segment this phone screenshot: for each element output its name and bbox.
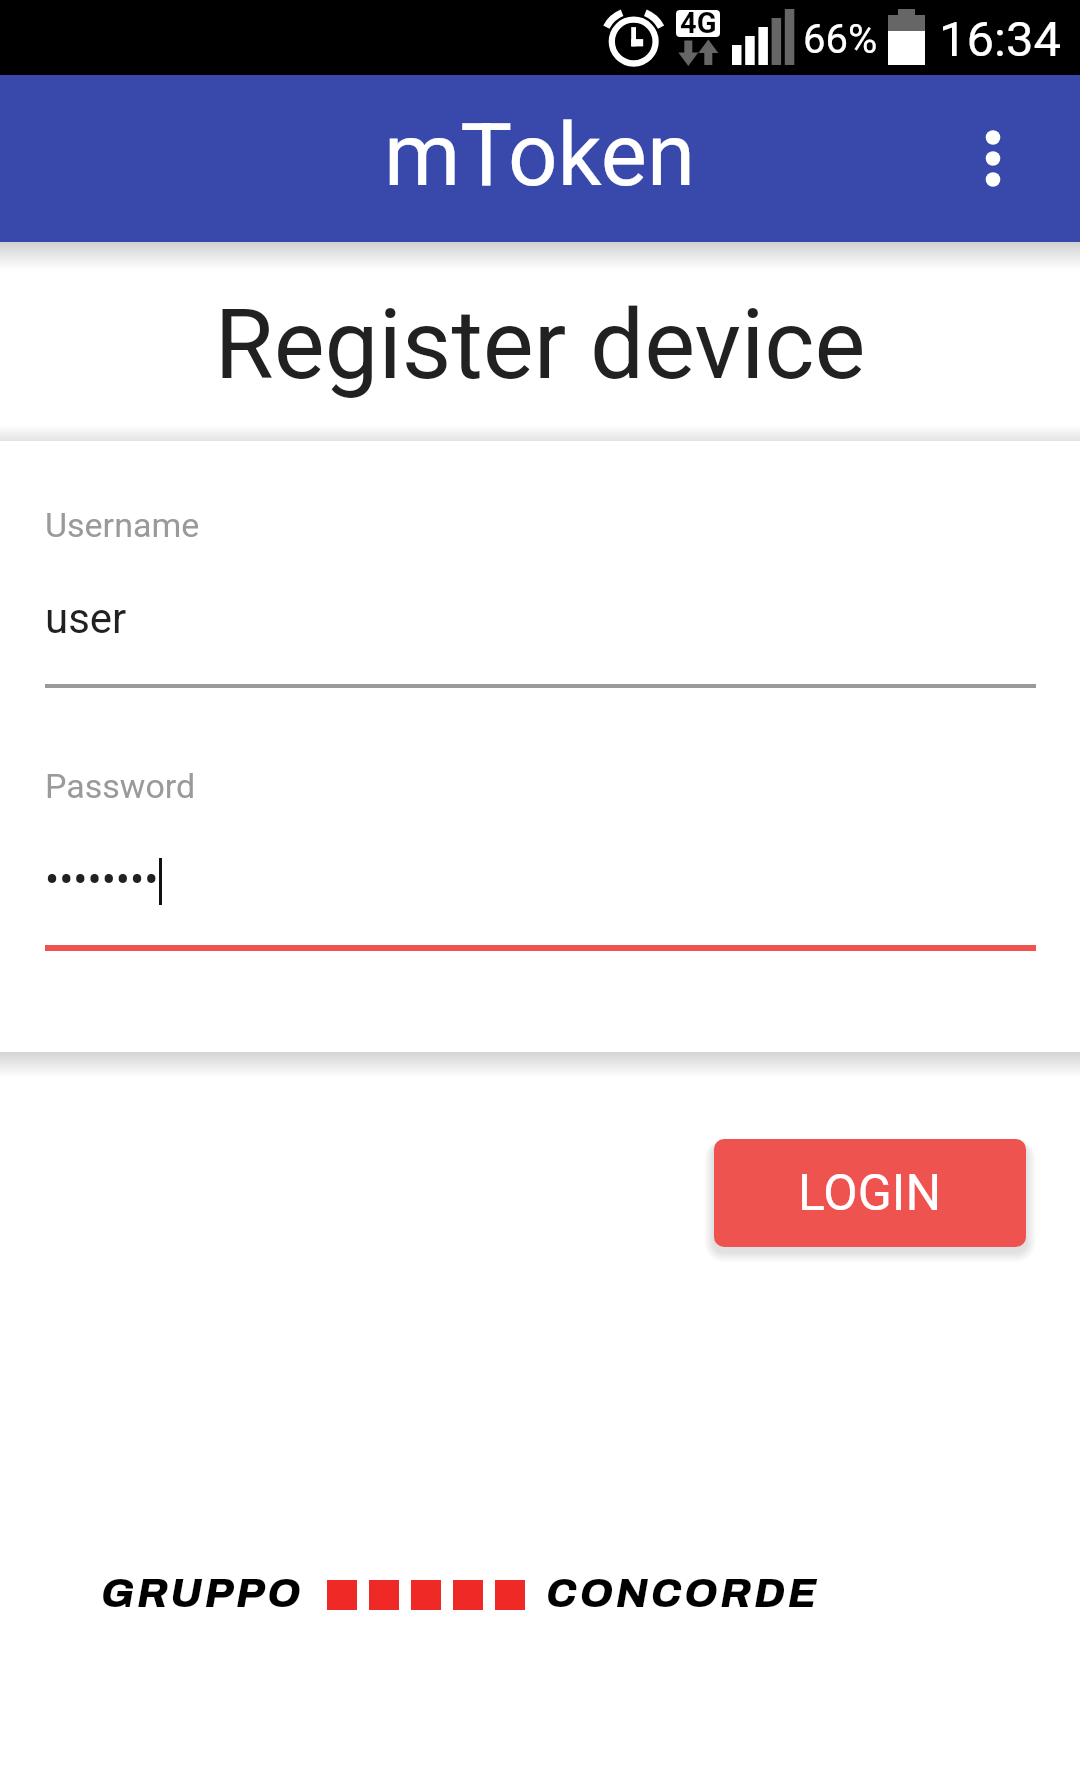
staticText: LOGIN [798,1164,942,1223]
button[interactable]: Username [45,495,1036,688]
staticText: 4G [680,6,717,40]
staticText: Username [45,505,200,545]
button[interactable]: More options [960,75,1080,242]
staticText: Register device [0,289,1080,402]
staticText: Password [45,766,196,806]
staticText: user [45,594,127,643]
staticText: 66% [803,16,878,63]
staticText: CONCORDE [546,1571,820,1616]
staticText: mToken [384,104,696,206]
staticText: GRUPPO [101,1571,304,1616]
staticText: •••••••• [45,855,159,904]
staticText: 16:34 [939,11,1062,68]
button[interactable]: LOGIN [714,1139,1026,1247]
button[interactable]: Password [45,756,1036,951]
